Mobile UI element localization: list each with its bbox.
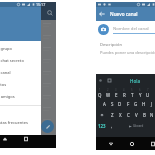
staticText: , xyxy=(111,123,113,129)
button[interactable]: Nuevo grupo xyxy=(0,42,41,54)
button[interactable]: Nuevo chat secreto xyxy=(0,54,41,66)
button[interactable]: V xyxy=(132,109,140,120)
staticText: 3 xyxy=(115,88,117,92)
staticText: C xyxy=(127,112,130,118)
button[interactable]: Nuevo canal xyxy=(0,66,41,78)
staticText: U xyxy=(146,92,150,98)
button[interactable]: Recent apps xyxy=(149,140,155,148)
staticText: Nuevo canal xyxy=(0,70,11,75)
button[interactable]: Q xyxy=(96,91,104,98)
staticText: G xyxy=(134,101,138,107)
button[interactable]: Invitar amigos xyxy=(0,90,41,102)
button[interactable]: Hide keyboard xyxy=(107,140,115,148)
staticText: D xyxy=(118,101,122,107)
staticText: F xyxy=(127,101,130,107)
button[interactable]: J xyxy=(148,98,155,109)
button[interactable]: Space xyxy=(116,120,155,131)
staticText: A xyxy=(103,101,106,107)
button[interactable]: , xyxy=(108,120,116,131)
button[interactable]: W xyxy=(104,91,112,98)
staticText: N xyxy=(150,112,154,118)
button[interactable]: New message xyxy=(41,120,54,133)
button[interactable]: Home xyxy=(128,140,136,148)
button[interactable]: B xyxy=(140,109,148,120)
staticText: B xyxy=(143,112,146,118)
staticText: 1 xyxy=(99,88,101,92)
staticText: 7 xyxy=(147,88,149,92)
staticText: 123 xyxy=(98,123,106,129)
staticText: Nuevo chat secreto xyxy=(0,58,24,63)
button[interactable]: Shift xyxy=(96,109,108,120)
staticText: J xyxy=(151,101,153,107)
button[interactable]: 123 xyxy=(96,120,108,131)
staticText: 2 xyxy=(107,88,109,92)
staticText: Invitar amigos xyxy=(0,94,15,99)
staticText: Y xyxy=(139,92,142,98)
staticText: Puedes poner una descripción opcional xyxy=(100,50,155,55)
staticText: W xyxy=(106,92,111,98)
button[interactable]: H xyxy=(140,98,148,109)
button[interactable]: Contactos xyxy=(0,78,41,90)
staticText: V xyxy=(135,112,138,118)
staticText: Hola xyxy=(130,78,141,84)
staticText: E xyxy=(115,92,118,98)
button[interactable]: Back xyxy=(98,10,106,18)
staticText: 4 xyxy=(123,88,125,92)
button[interactable]: A xyxy=(100,98,108,109)
button[interactable]: Recent apps xyxy=(22,135,30,143)
button[interactable]: X xyxy=(116,109,124,120)
staticText: S xyxy=(111,101,114,107)
staticText: Gboard xyxy=(133,124,144,128)
button[interactable]: R xyxy=(120,91,128,98)
button[interactable]: U xyxy=(144,91,152,98)
staticText: Contactos xyxy=(0,82,7,87)
button[interactable]: Y xyxy=(136,91,144,98)
button[interactable]: Set channel photo xyxy=(98,24,109,35)
staticText: X xyxy=(119,112,122,118)
staticText: Descripción xyxy=(100,42,122,47)
button[interactable]: Hola xyxy=(130,78,141,84)
staticText: Nuevo canal xyxy=(110,11,138,17)
staticText: 5 xyxy=(131,88,133,92)
staticText: T xyxy=(131,92,134,98)
staticText: Preguntas frecuentes xyxy=(0,120,29,125)
button[interactable]: T xyxy=(128,91,136,98)
button[interactable]: Search xyxy=(46,9,54,17)
staticText: 15:17 xyxy=(36,2,46,7)
button[interactable]: Clipboard xyxy=(107,78,112,83)
button[interactable]: D xyxy=(116,98,124,109)
button[interactable]: Gboard settings xyxy=(98,78,103,83)
staticText: Nuevo grupo xyxy=(0,46,13,51)
staticText: Z xyxy=(111,112,114,118)
button[interactable]: S xyxy=(108,98,116,109)
staticText: R xyxy=(123,92,126,98)
button[interactable]: Home xyxy=(1,135,9,143)
button[interactable]: G xyxy=(132,98,140,109)
staticText: H xyxy=(142,101,146,107)
staticText: 6 xyxy=(139,88,141,92)
button[interactable]: C xyxy=(124,109,132,120)
button[interactable]: F xyxy=(124,98,132,109)
staticText: Q xyxy=(98,92,102,98)
staticText: Nombre del canal xyxy=(113,25,149,31)
button[interactable]: E xyxy=(112,91,120,98)
button[interactable]: Z xyxy=(108,109,116,120)
button[interactable]: Preguntas frecuentes xyxy=(0,116,41,128)
button[interactable]: N xyxy=(148,109,155,120)
